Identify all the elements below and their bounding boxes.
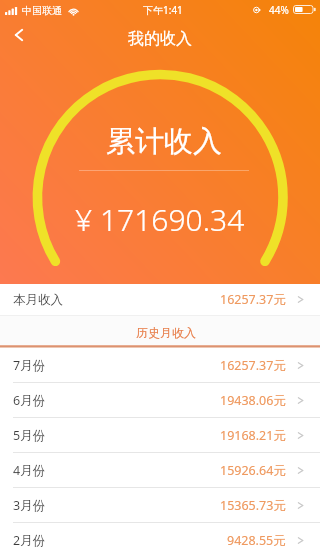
staticText: 9428.55元 [227,532,286,549]
staticText: 5月份 [13,427,46,444]
staticText: 15365.73元 [220,497,286,514]
staticText: 本月收入 [13,292,63,308]
button[interactable]: Back [0,20,38,50]
staticText: 16257.37元 [220,357,286,374]
staticText: 中国联通 [22,4,62,17]
button[interactable]: 5月份 [0,418,320,453]
staticText: 19438.06元 [220,392,286,409]
button[interactable]: 本月收入 [0,284,320,315]
staticText: 16257.37元 [220,291,286,308]
staticText: ¥ 171690.34 [75,199,245,240]
button[interactable]: 7月份 [0,348,320,383]
staticText: 历史月收入 [136,325,196,340]
staticText: 2月份 [13,532,46,549]
staticText: 7月份 [13,357,46,374]
staticText: 我的收入 [128,29,192,49]
staticText: 19168.21元 [220,427,286,444]
staticText: 6月份 [13,392,46,409]
button[interactable]: 4月份 [0,453,320,488]
staticText: 累计收入 [106,123,222,160]
staticText: 下午1:41 [143,3,183,17]
button[interactable]: 3月份 [0,488,320,523]
staticText: 4月份 [13,462,46,479]
staticText: 44% [269,3,289,17]
staticText: 3月份 [13,497,46,514]
button[interactable]: 2月份 [0,523,320,550]
staticText: 15926.64元 [220,462,286,479]
button[interactable]: 6月份 [0,383,320,418]
